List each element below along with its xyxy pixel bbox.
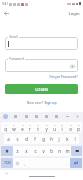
button[interactable]: n [55, 146, 63, 156]
staticText: p [77, 126, 80, 132]
staticText: 9 [70, 123, 72, 126]
staticText: . [65, 161, 67, 166]
button[interactable]: z [13, 146, 22, 156]
button[interactable]: Tool 2 [34, 114, 39, 119]
button[interactable]: Show password [69, 63, 75, 69]
button[interactable]: Tool 3 [44, 114, 49, 119]
staticText: v [42, 148, 45, 154]
staticText: a [7, 136, 10, 142]
button[interactable]: LOGIN [5, 84, 78, 94]
staticText: t [37, 126, 39, 132]
staticText: New user? [26, 100, 44, 105]
staticText: 5 [37, 123, 39, 126]
staticText: ?123 [4, 161, 11, 165]
staticText: k [66, 136, 69, 142]
staticText: d [25, 136, 28, 142]
button[interactable]: 8 [58, 122, 66, 132]
button[interactable]: Enter [70, 158, 82, 168]
button[interactable]: m [63, 146, 71, 156]
staticText: 7 [54, 123, 56, 126]
button[interactable]: 5 [34, 122, 42, 132]
button[interactable]: Comma [21, 158, 29, 168]
button[interactable]: 4 [26, 122, 34, 132]
button[interactable]: 7 [50, 122, 58, 132]
staticText: c [34, 148, 37, 154]
staticText: Login [68, 11, 80, 17]
button[interactable]: 0 [74, 122, 82, 132]
staticText: l [74, 136, 76, 142]
staticText: b [50, 148, 53, 154]
button[interactable]: Tool 0 [13, 114, 18, 119]
staticText: g [42, 136, 45, 142]
button[interactable]: Symbols [1, 158, 13, 168]
staticText: LOGIN [35, 87, 48, 92]
button[interactable]: Tool 1 [24, 114, 29, 119]
button[interactable]: Hide keyboard [4, 171, 9, 176]
staticText: m [65, 148, 70, 154]
button[interactable] [5, 37, 78, 50]
button[interactable]: g [39, 134, 47, 144]
staticText: q [4, 126, 7, 132]
staticText: 4 [29, 123, 31, 126]
button[interactable]: j [55, 134, 63, 144]
staticText: 6 [46, 123, 48, 126]
button[interactable]: More [65, 114, 70, 119]
staticText: 3 [22, 123, 24, 126]
staticText: u [53, 126, 56, 132]
button[interactable]: Settings [75, 114, 80, 119]
button[interactable]: Backspace [71, 146, 82, 156]
button[interactable]: x [22, 146, 31, 156]
button[interactable]: Back [2, 9, 11, 18]
button[interactable]: Shift [1, 146, 13, 156]
button[interactable]: a [4, 134, 13, 144]
staticText: s [16, 136, 19, 142]
button[interactable]: d [22, 134, 31, 144]
staticText: i [61, 126, 63, 132]
button[interactable]: Forgot Password? [49, 74, 78, 79]
staticText: e [21, 126, 24, 132]
staticText: 8 [61, 123, 63, 126]
staticText: r [29, 126, 31, 132]
staticText: n [58, 148, 61, 154]
button[interactable]: 6 [42, 122, 50, 132]
staticText: 9:41 [2, 2, 8, 6]
button[interactable]: New user? [0, 98, 83, 106]
button[interactable]: c [31, 146, 39, 156]
button[interactable]: b [47, 146, 55, 156]
button[interactable]: s [13, 134, 22, 144]
staticText: x [25, 148, 28, 154]
button[interactable] [5, 59, 78, 72]
button[interactable]: 2 [10, 122, 18, 132]
staticText: Password [9, 57, 24, 61]
staticText: j [58, 136, 60, 142]
button[interactable]: Gboard menu [3, 114, 8, 119]
staticText: 0 [78, 123, 80, 126]
staticText: z [16, 148, 19, 154]
button[interactable]: 3 [18, 122, 26, 132]
button[interactable]: h [47, 134, 55, 144]
button[interactable]: f [31, 134, 39, 144]
staticText: 2 [13, 123, 15, 126]
staticText: Email [9, 35, 18, 39]
staticText: , [24, 161, 26, 166]
button[interactable]: Clipboard [54, 114, 59, 119]
staticText: o [69, 126, 72, 132]
staticText: 1 [5, 123, 7, 126]
button[interactable]: v [39, 146, 47, 156]
button[interactable]: k [63, 134, 71, 144]
button[interactable]: Emoji [13, 158, 21, 168]
staticText: h [50, 136, 53, 142]
staticText: w [12, 126, 16, 132]
staticText: y [45, 126, 48, 132]
staticText: Sign up [44, 100, 57, 105]
staticText: f [34, 136, 36, 142]
button[interactable]: 9 [66, 122, 74, 132]
button[interactable]: 1 [1, 122, 10, 132]
button[interactable]: l [71, 134, 79, 144]
